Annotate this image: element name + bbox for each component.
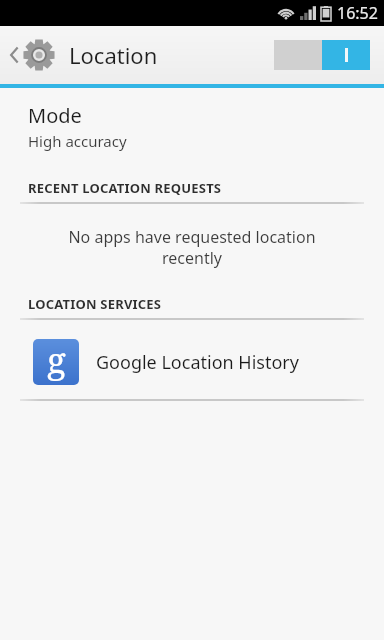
staticText: Mode <box>28 102 82 129</box>
button[interactable]: Navigate up <box>0 30 60 80</box>
staticText: 16:52 <box>337 2 378 24</box>
button[interactable]: Location on/off <box>274 40 370 70</box>
staticText: High accuracy <box>28 131 127 151</box>
button[interactable]: g <box>0 332 384 392</box>
staticText: Location <box>69 40 158 70</box>
staticText: g <box>47 339 66 382</box>
button[interactable]: Mode <box>0 98 384 159</box>
staticText: RECENT LOCATION REQUESTS <box>28 179 222 197</box>
staticText: LOCATION SERVICES <box>28 295 162 313</box>
staticText: Google Location History <box>96 350 299 375</box>
staticText: No apps have requested location recently <box>28 226 356 269</box>
